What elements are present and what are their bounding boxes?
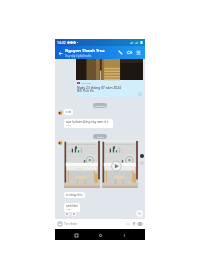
button[interactable]: c ơi xyxy=(64,109,73,115)
button[interactable]: Recent apps xyxy=(72,231,80,239)
staticText: youtu.be xyxy=(81,81,91,84)
button[interactable]: Emoji xyxy=(57,221,63,227)
button[interactable]: Home xyxy=(96,231,104,239)
button[interactable]: Camera xyxy=(137,221,143,227)
staticText: Nguyen Thanh Truc xyxy=(65,48,105,54)
staticText: 14:32 xyxy=(57,40,66,45)
button[interactable]: Call xyxy=(117,49,124,56)
staticText: sửa lại bàn đứng này xem ổ c xyxy=(66,120,109,124)
button[interactable]: e cũng rồi c xyxy=(64,192,85,198)
staticText: e cũng rồi c xyxy=(66,193,83,197)
button[interactable]: Scroll to bottom xyxy=(136,210,143,217)
staticText: 14:25 xyxy=(97,135,104,138)
staticText: 14:27 xyxy=(66,208,72,211)
button[interactable]: 14:25 xyxy=(93,134,107,139)
button[interactable]: Video call xyxy=(126,49,133,56)
button[interactable]: Hôm nay xyxy=(93,103,107,108)
staticText: Tin nhắn xyxy=(64,222,78,226)
button[interactable]: Menu xyxy=(135,49,142,56)
staticText: Truy cập 3 phút trước xyxy=(65,54,92,58)
button[interactable]: youtu.be xyxy=(76,59,143,97)
button[interactable]: More options xyxy=(125,221,131,227)
staticText: 14:11 xyxy=(66,124,72,127)
staticText: Ngày 23 tháng 07 năm 2024 xyxy=(77,85,122,89)
button[interactable]: Back xyxy=(56,49,64,57)
staticText: Nội Thất Hà xyxy=(77,89,94,93)
button[interactable]: Voice message xyxy=(131,221,137,227)
staticText: Hôm nay xyxy=(95,104,106,107)
button[interactable]: anh lắm xyxy=(64,203,80,212)
button[interactable]: Back xyxy=(120,231,128,239)
button[interactable]: sửa lại bàn đứng này xem ổ c xyxy=(64,119,113,128)
staticText: c ơi xyxy=(66,110,71,114)
staticText: anh lắm xyxy=(66,204,78,208)
